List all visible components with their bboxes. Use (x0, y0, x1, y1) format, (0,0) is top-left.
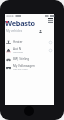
button[interactable]: Open navigation menu (46, 16, 54, 24)
staticText: Aut N (13, 47, 21, 51)
button[interactable]: Aut N (5, 46, 54, 54)
button[interactable]: Account (38, 29, 43, 34)
button[interactable]: BW, Stirling (5, 55, 54, 63)
staticText: Heater (13, 40, 23, 44)
staticText: My Volkswagen (13, 64, 35, 68)
button[interactable]: Heater (5, 38, 54, 46)
button[interactable]: My vehicles (6, 29, 23, 33)
staticText: Mercedes (13, 51, 23, 54)
staticText: Webasto (5, 18, 35, 28)
button[interactable]: Webasto (5, 18, 35, 28)
button[interactable]: My Volkswagen (5, 63, 54, 71)
staticText: BW, Stirling (13, 57, 30, 61)
staticText: My vehicles (6, 29, 23, 33)
staticText: Last trip 12km (13, 68, 28, 71)
